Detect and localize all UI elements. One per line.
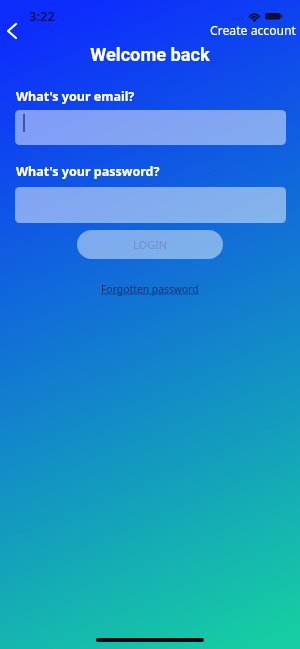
staticText: LOGIN xyxy=(133,237,168,252)
staticText: What's your password? xyxy=(16,163,160,180)
staticText: Create account xyxy=(210,22,297,39)
staticText: 3:22 xyxy=(29,7,55,25)
staticText: What's your email? xyxy=(16,88,135,105)
button[interactable]: Forgotten password xyxy=(98,279,202,299)
button[interactable]: LOGIN xyxy=(77,230,223,259)
button[interactable] xyxy=(15,110,286,145)
staticText: Forgotten password xyxy=(101,282,199,296)
staticText: Welcome back xyxy=(0,44,300,649)
button[interactable]: Back xyxy=(0,19,26,43)
button[interactable] xyxy=(15,187,286,223)
button[interactable]: Create account xyxy=(205,18,300,40)
